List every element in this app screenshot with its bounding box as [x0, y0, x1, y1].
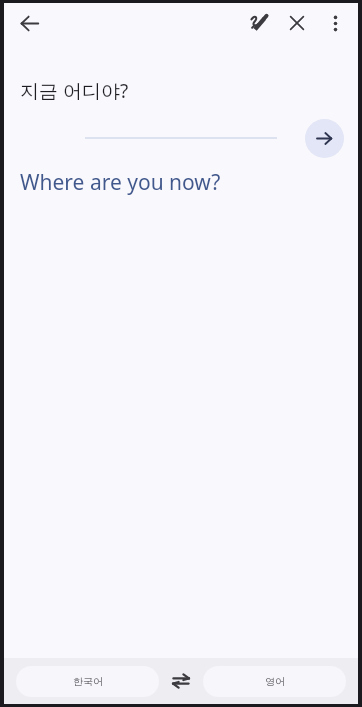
button[interactable]: Close [278, 4, 316, 42]
staticText: 영어 [265, 675, 285, 688]
button[interactable]: 영어 [203, 666, 346, 697]
button[interactable]: Swap languages [159, 663, 203, 699]
button[interactable]: Back [9, 3, 49, 43]
button[interactable]: More options [316, 4, 354, 42]
staticText: Where are you now? [20, 168, 221, 197]
button[interactable]: Translate [305, 119, 344, 158]
staticText: 한국어 [73, 675, 103, 688]
button[interactable]: Handwriting [240, 4, 278, 42]
button[interactable]: 한국어 [16, 666, 159, 697]
staticText: 지금 어디야? [20, 78, 129, 104]
